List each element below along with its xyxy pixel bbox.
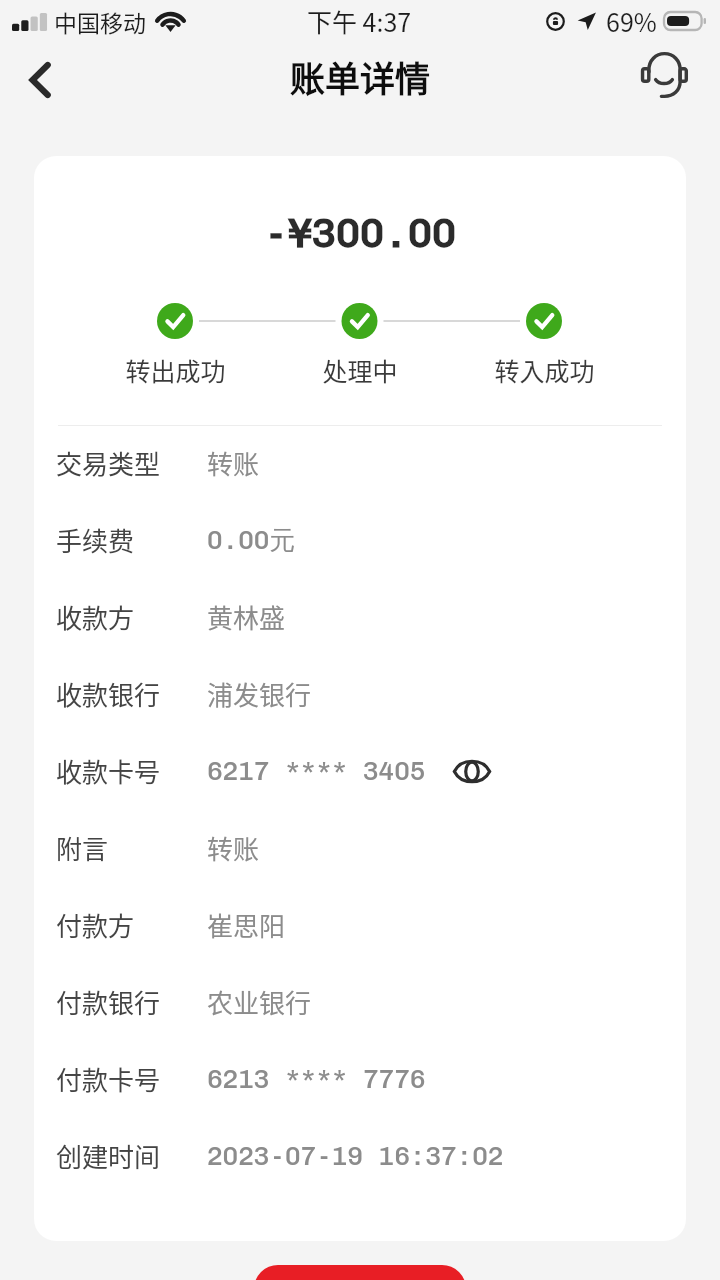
staticText: 交易类型 <box>56 444 207 482</box>
button[interactable]: 附言 <box>34 829 686 867</box>
staticText: 崔思阳 <box>207 906 286 944</box>
staticText: 收款银行 <box>56 675 207 713</box>
button[interactable]: Back <box>6 44 74 116</box>
button[interactable]: 收款卡号 <box>34 752 686 790</box>
staticText: 中国移动 <box>54 5 146 38</box>
staticText: 收款卡号 <box>56 752 207 790</box>
staticText: 农业银行 <box>207 983 312 1021</box>
staticText: 69% <box>606 3 657 39</box>
staticText: 付款银行 <box>56 983 207 1021</box>
staticText: 付款方 <box>56 906 207 944</box>
button[interactable]: 收款方 <box>34 598 686 636</box>
staticText: 转入成功 <box>494 352 595 388</box>
staticText: 账单详情 <box>290 51 431 102</box>
staticText: 转出成功 <box>125 352 226 388</box>
button[interactable]: 创建时间 <box>34 1137 686 1175</box>
staticText: 处理中 <box>322 352 398 388</box>
staticText: 收款方 <box>56 598 207 636</box>
button[interactable]: 付款银行 <box>34 983 686 1021</box>
staticText: 下午 4:37 <box>307 3 412 39</box>
button[interactable]: Customer service <box>628 39 700 111</box>
button[interactable]: 手续费 <box>34 521 686 559</box>
button[interactable]: 交易类型 <box>34 444 686 482</box>
staticText: 浦发银行 <box>207 675 312 713</box>
staticText: 6217 **** 3405 <box>207 756 426 787</box>
staticText: 转账 <box>207 829 260 867</box>
staticText: 6213 **** 7776 <box>207 1064 426 1095</box>
staticText: 转账 <box>207 444 260 482</box>
staticText: 黄林盛 <box>207 598 286 636</box>
staticText: 附言 <box>56 829 207 867</box>
staticText: 创建时间 <box>56 1137 207 1175</box>
staticText: 付款卡号 <box>56 1060 207 1098</box>
staticText: -¥300.00 <box>34 209 686 257</box>
button[interactable]: 付款方 <box>34 906 686 944</box>
staticText: 2023-07-19 16:37:02 <box>207 1141 504 1172</box>
button[interactable]: 收款银行 <box>34 675 686 713</box>
button[interactable]: 付款卡号 <box>34 1060 686 1098</box>
button[interactable]: Show card number <box>449 752 495 790</box>
staticText: 0.00元 <box>207 524 296 557</box>
button[interactable]: 再转一笔 <box>254 1265 466 1280</box>
staticText: 手续费 <box>56 521 207 559</box>
